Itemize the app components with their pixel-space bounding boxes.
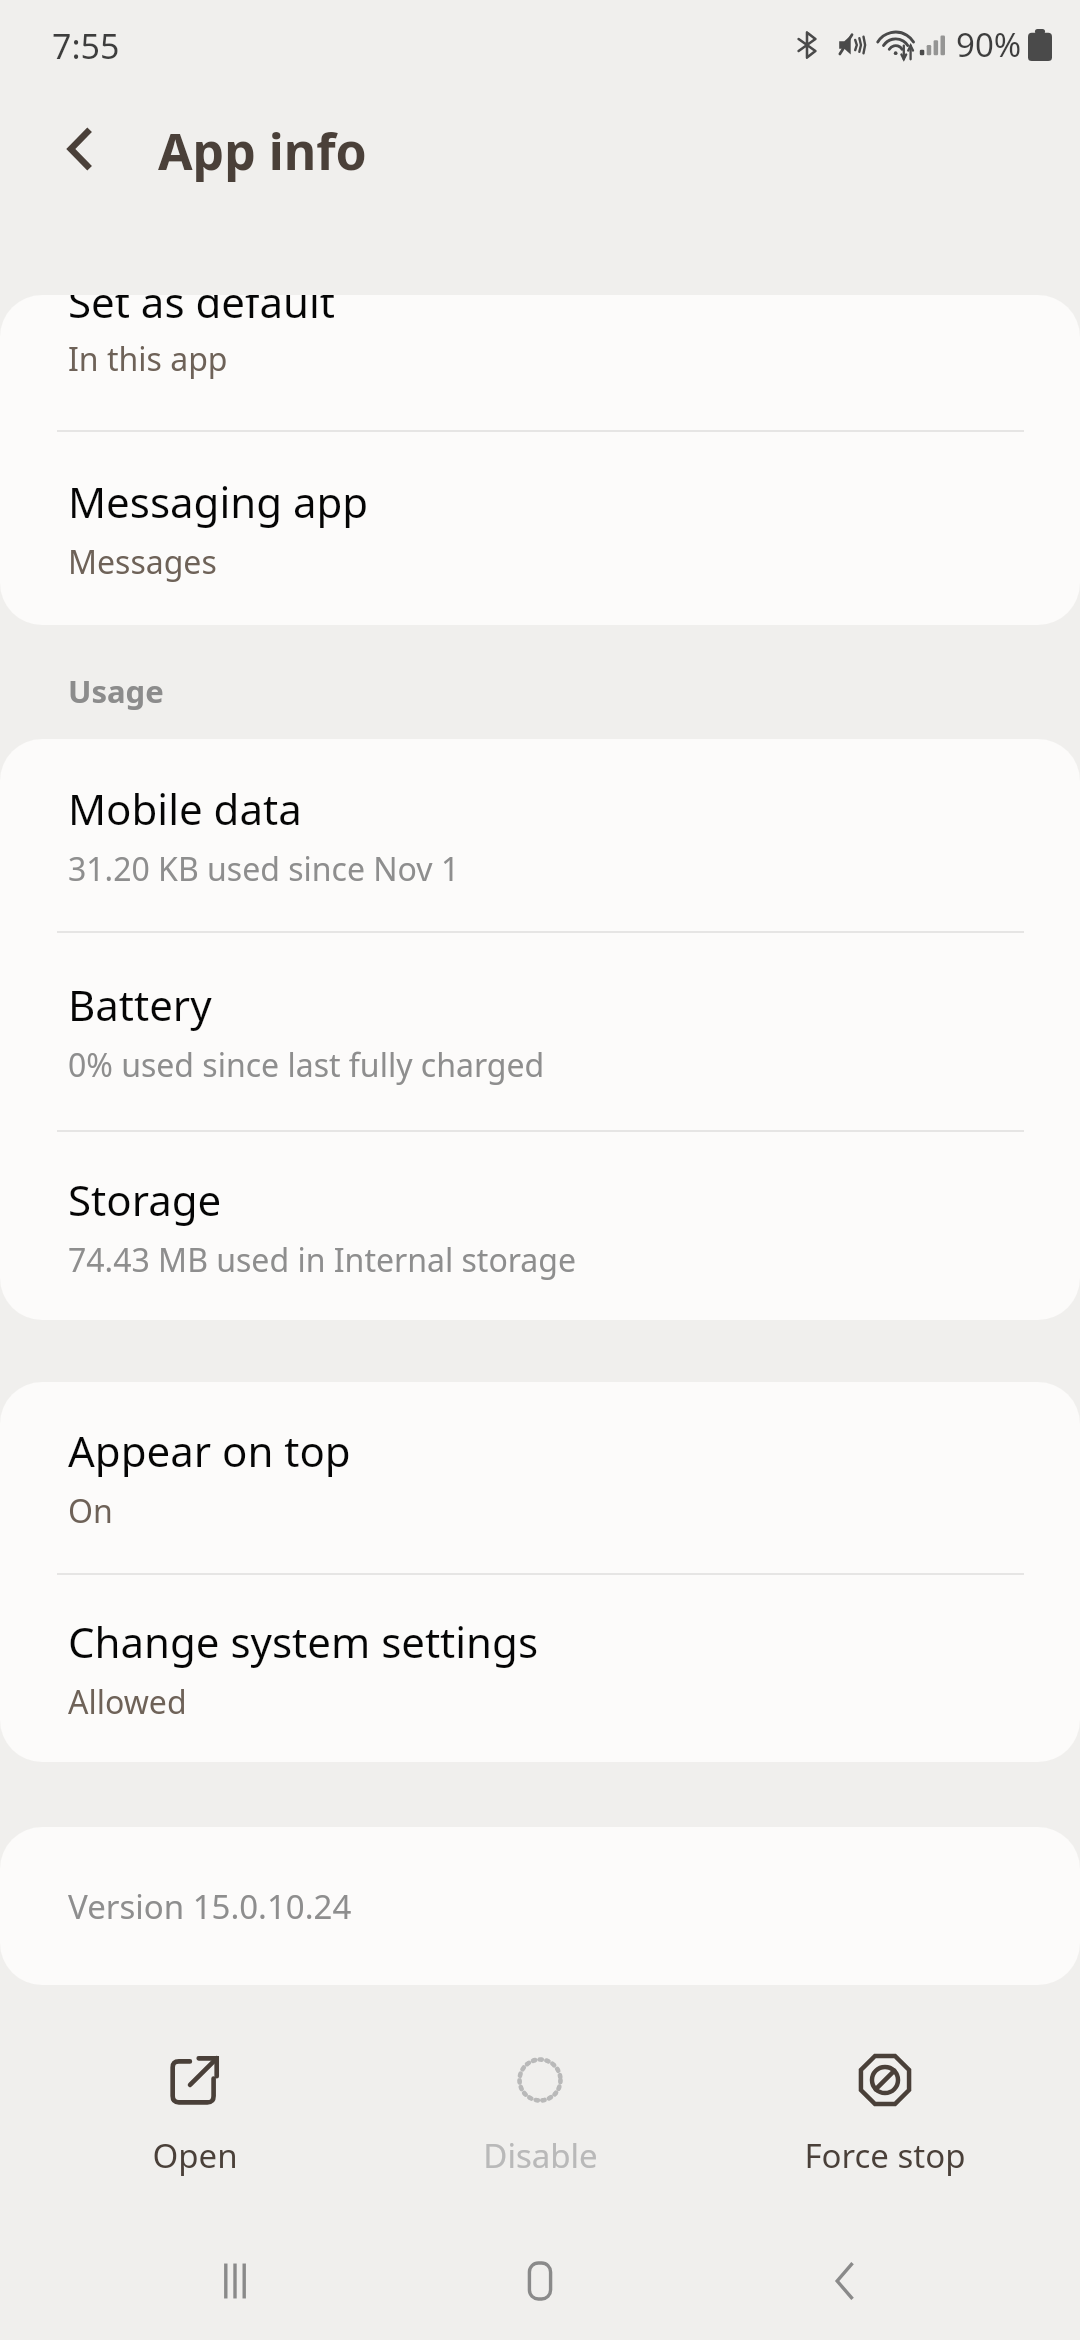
staticText: 90% — [956, 22, 1022, 67]
staticText: 7:55 — [52, 23, 120, 69]
button[interactable]: Force stop — [735, 2041, 1035, 2186]
staticText: Messages — [68, 540, 217, 584]
staticText: Change system settings — [68, 1613, 539, 1670]
staticText: In this app — [68, 337, 228, 381]
staticText: Mobile data — [68, 780, 302, 837]
button[interactable]: Back — [775, 2222, 915, 2340]
staticText: On — [68, 1489, 113, 1533]
button[interactable]: Mobile data — [0, 739, 1080, 931]
button[interactable]: Set as default — [0, 295, 1080, 430]
staticText: 31.20 KB used since Nov 1 — [68, 847, 460, 891]
button[interactable]: Recents — [165, 2222, 305, 2340]
button[interactable]: Home — [470, 2222, 610, 2340]
button[interactable]: Back — [40, 109, 120, 189]
button[interactable]: Messaging app — [0, 432, 1080, 625]
staticText: Set as default — [68, 295, 335, 330]
button[interactable]: Version 15.0.10.24 — [0, 1827, 1080, 1985]
staticText: Open — [152, 2133, 238, 2178]
staticText: Disable — [483, 2133, 598, 2178]
staticText: Force stop — [804, 2133, 966, 2178]
staticText: Appear on top — [68, 1422, 351, 1479]
staticText: Messaging app — [68, 473, 369, 530]
staticText: App info — [158, 117, 367, 185]
button[interactable]: Disable — [390, 2041, 690, 2186]
staticText: 0% used since last fully charged — [68, 1043, 545, 1087]
staticText: Battery — [68, 976, 212, 1033]
staticText: Allowed — [68, 1680, 187, 1724]
button[interactable]: Battery — [0, 933, 1080, 1130]
staticText: Version 15.0.10.24 — [68, 1884, 352, 1929]
button[interactable]: Appear on top — [0, 1382, 1080, 1573]
staticText: Usage — [68, 670, 164, 712]
button[interactable]: Change system settings — [0, 1575, 1080, 1762]
staticText: 74.43 MB used in Internal storage — [68, 1238, 577, 1282]
staticText: Storage — [68, 1171, 222, 1228]
button[interactable]: Open — [45, 2041, 345, 2186]
button[interactable]: Storage — [0, 1132, 1080, 1320]
